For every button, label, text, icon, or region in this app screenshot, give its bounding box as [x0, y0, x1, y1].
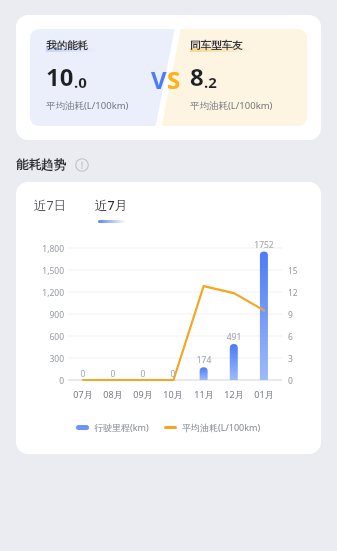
staticText: 15 [288, 265, 298, 277]
staticText: 0 [288, 375, 293, 387]
staticText: 1,800 [26, 243, 64, 255]
staticText: S [167, 63, 181, 96]
staticText: 10 [46, 60, 74, 93]
staticText: 1,500 [26, 265, 64, 277]
staticText: 0 [26, 375, 64, 387]
staticText: 900 [26, 309, 64, 321]
button[interactable]: 我的能耗 [16, 15, 321, 140]
staticText: 0 [68, 368, 98, 380]
staticText: 08月 [98, 388, 128, 400]
staticText: 6 [288, 331, 293, 343]
staticText: 平均油耗(L/100km) [190, 99, 273, 112]
staticText: 近7月 [95, 197, 128, 214]
staticText: 同车型车友 [190, 39, 243, 52]
staticText: .0 [74, 72, 87, 92]
staticText: 11月 [189, 388, 219, 400]
staticText: 1,200 [26, 287, 64, 299]
staticText: 行驶里程(km) [94, 421, 149, 433]
staticText: V [151, 63, 167, 96]
staticText: 0 [128, 368, 158, 380]
button[interactable]: 说明 [75, 158, 89, 172]
staticText: 01月 [249, 388, 279, 400]
staticText: 600 [26, 331, 64, 343]
staticText: .2 [204, 72, 217, 92]
staticText: 174 [189, 354, 219, 366]
staticText: 10月 [158, 388, 188, 400]
staticText: 09月 [128, 388, 158, 400]
staticText: 8 [190, 60, 204, 93]
staticText: 平均油耗(L/100km) [46, 99, 129, 112]
staticText: 近7日 [34, 197, 67, 214]
staticText: 0 [158, 368, 188, 380]
staticText: 0 [98, 368, 128, 380]
staticText: 平均油耗(L/100km) [182, 421, 261, 433]
button[interactable]: 近7月 [93, 197, 130, 223]
staticText: 12 [288, 287, 298, 299]
staticText: 能耗趋势 [16, 157, 66, 173]
staticText: 1752 [249, 239, 279, 251]
staticText: 12月 [219, 388, 249, 400]
staticText: 3 [288, 353, 293, 365]
staticText: 300 [26, 353, 64, 365]
button[interactable]: 近7日 [32, 197, 69, 223]
staticText: 9 [288, 309, 293, 321]
staticText: 07月 [68, 388, 98, 400]
staticText: 491 [219, 331, 249, 343]
staticText: 我的能耗 [46, 39, 88, 52]
